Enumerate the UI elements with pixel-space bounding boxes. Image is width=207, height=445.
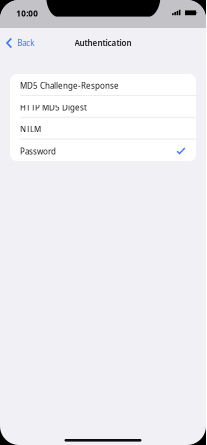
staticText: MD5 Challenge-Response xyxy=(20,80,119,91)
button[interactable]: MD5 Challenge-Response xyxy=(10,74,196,96)
button[interactable]: Back xyxy=(0,33,42,52)
staticText: 10:00 xyxy=(16,8,38,19)
button[interactable]: HTTP MD5 Digest xyxy=(10,96,196,118)
button[interactable]: NTLM xyxy=(10,118,196,139)
staticText: Back xyxy=(17,38,34,48)
staticText: NTLM xyxy=(20,124,41,134)
button[interactable]: Password xyxy=(10,139,196,161)
staticText: Authentication xyxy=(74,38,131,48)
staticText: HTTP MD5 Digest xyxy=(20,102,87,113)
staticText: Password xyxy=(20,146,56,157)
